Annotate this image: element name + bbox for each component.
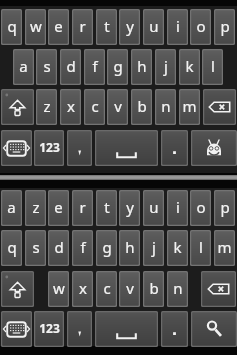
button[interactable]: v [119,271,140,307]
staticText: v [126,278,134,298]
button[interactable]: s [36,49,57,85]
button[interactable]: q [1,9,22,45]
button[interactable]: y [119,190,140,226]
button[interactable]: d [60,49,81,85]
button[interactable]: e [48,190,69,226]
button[interactable]: Comma [67,311,92,347]
button[interactable]: x [72,271,93,307]
button[interactable]: d [48,230,69,266]
button[interactable]: Period [161,130,188,166]
staticText: f [80,237,86,257]
staticText: u [149,16,159,36]
button[interactable]: o [190,9,211,45]
button[interactable]: c [84,89,105,125]
button[interactable]: b [143,271,164,307]
button[interactable]: n [167,271,188,307]
button[interactable]: z [36,89,57,125]
staticText: g [113,56,123,76]
button[interactable]: Space [95,311,158,347]
button[interactable]: e [48,9,69,45]
button[interactable]: m [179,89,200,125]
button[interactable]: k [167,230,188,266]
button[interactable]: h [119,230,140,266]
button[interactable]: p [214,9,235,45]
button[interactable]: o [190,190,211,226]
button[interactable]: Space [95,130,158,166]
staticText: x [79,278,87,298]
button[interactable]: u [143,9,164,45]
button[interactable]: b [131,89,152,125]
button[interactable]: s [25,230,46,266]
button[interactable]: c [96,271,117,307]
button[interactable]: Backspace [201,271,236,307]
button[interactable]: l [190,230,211,266]
staticText: t [104,16,110,36]
button[interactable]: j [155,49,176,85]
button[interactable]: g [96,230,117,266]
button[interactable]: Switch keyboard [1,311,32,347]
staticText: p [220,197,230,217]
button[interactable]: q [1,230,22,266]
button[interactable]: 123 [34,130,64,166]
staticText: c [103,278,111,298]
button[interactable]: p [214,190,235,226]
button[interactable]: w [25,9,46,45]
staticText: b [149,278,159,298]
button[interactable]: a [1,190,22,226]
staticText: q [7,16,17,36]
button[interactable]: t [96,9,117,45]
button[interactable]: Period [161,311,188,347]
button[interactable]: Switch keyboard [1,130,32,166]
button[interactable]: 123 [34,311,64,347]
staticText: v [114,96,122,116]
staticText: t [104,197,110,217]
button[interactable]: m [214,230,235,266]
button[interactable]: t [96,190,117,226]
button[interactable]: x [60,89,81,125]
button[interactable]: u [143,190,164,226]
button[interactable]: v [107,89,128,125]
button[interactable]: r [72,9,93,45]
button[interactable]: Shift [1,89,34,125]
staticText: w [53,278,65,298]
staticText: 123 [39,320,60,336]
button[interactable]: l [202,49,223,85]
staticText: z [43,96,51,116]
button[interactable]: k [179,49,200,85]
button[interactable]: h [131,49,152,85]
button[interactable]: Backspace [203,89,236,125]
button[interactable]: n [155,89,176,125]
button[interactable]: j [143,230,164,266]
button[interactable]: g [107,49,128,85]
staticText: i [176,16,180,36]
button[interactable]: a [13,49,34,85]
staticText: m [182,96,197,116]
staticText: j [152,237,156,257]
staticText: l [199,237,203,257]
staticText: e [54,197,63,217]
button[interactable]: r [72,190,93,226]
button[interactable]: Search [191,311,237,347]
staticText: y [126,16,134,36]
button[interactable]: z [25,190,46,226]
staticText: d [66,56,76,76]
button[interactable]: Comma [67,130,92,166]
staticText: s [43,56,51,76]
button[interactable]: i [167,9,188,45]
staticText: r [79,197,86,217]
button[interactable]: i [167,190,188,226]
button[interactable]: w [48,271,69,307]
staticText: x [67,96,75,116]
staticText: n [173,278,183,298]
button[interactable]: Emoji [191,130,237,166]
button[interactable]: y [119,9,140,45]
staticText: h [137,56,147,76]
button[interactable]: Shift [1,271,34,307]
staticText: w [30,16,42,36]
button[interactable]: f [84,49,105,85]
staticText: e [54,16,63,36]
staticText: j [164,56,168,76]
staticText: h [125,237,135,257]
staticText: m [217,237,232,257]
button[interactable]: f [72,230,93,266]
